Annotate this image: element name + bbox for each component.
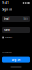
- button[interactable]: Forgot code?: [0, 51, 32, 54]
- staticText: Log In: [11, 58, 20, 61]
- staticText: Forgot code?: [2, 52, 12, 53]
- staticText: 9:41: [2, 1, 9, 5]
- staticText: Sign in: [2, 8, 12, 11]
- staticText: Remember: [5, 37, 13, 38]
- button[interactable]: Name: [2, 27, 30, 33]
- button[interactable]: Log In: [2, 57, 30, 63]
- button[interactable]: Remember: [0, 36, 32, 39]
- staticText: Edit: [23, 17, 28, 21]
- staticText: Email: [4, 17, 10, 21]
- button[interactable]: Email: [2, 16, 30, 22]
- staticText: Name: [4, 28, 11, 32]
